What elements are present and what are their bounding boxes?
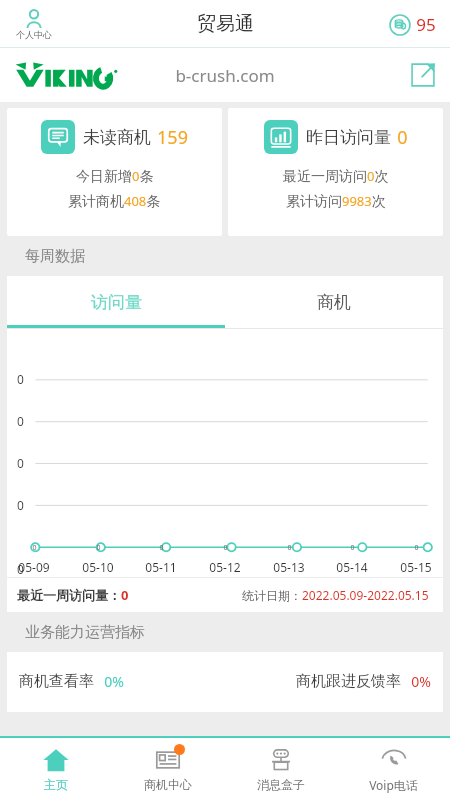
staticText: 每周数据 (25, 247, 85, 266)
button[interactable]: 消息盒子 (224, 738, 337, 800)
button[interactable]: Open website (410, 62, 436, 88)
button[interactable]: 访问量 (7, 276, 225, 328)
staticText: 商机中心 (144, 777, 192, 792)
staticText: 0 (17, 497, 24, 513)
staticText: 商机查看率 (19, 672, 94, 691)
button[interactable]: 昨日访问量 (228, 108, 443, 236)
staticText: 159 (157, 125, 188, 150)
staticText: 贸易通 (197, 12, 254, 36)
staticText: 消息盒子 (257, 777, 305, 792)
button[interactable]: 商机中心 (112, 738, 224, 800)
staticText: 累计商机408条 (68, 192, 161, 210)
staticText: 0 (17, 455, 24, 471)
staticText: 商机 (317, 292, 351, 313)
staticText: 0 (17, 561, 24, 577)
staticText: 0 (287, 543, 292, 553)
staticText: 个人中心 (16, 29, 52, 40)
staticText: 0% (411, 672, 431, 691)
staticText: Voip电话 (369, 777, 418, 793)
staticText: 今日新增0条 (76, 167, 154, 185)
staticText: 0% (104, 672, 124, 691)
staticText: 95 (416, 13, 436, 36)
staticText: 0 (17, 371, 24, 387)
staticText: 0 (414, 543, 419, 553)
button[interactable]: 未读商机 (7, 108, 222, 236)
staticText: 主页 (44, 777, 68, 792)
staticText: 05-09 (18, 559, 50, 575)
staticText: 0 (17, 413, 24, 429)
staticText: 05-15 (400, 559, 432, 575)
staticText: b-crush.com (175, 64, 275, 87)
staticText: 访问量 (91, 292, 142, 313)
button[interactable]: 个人中心 (12, 7, 56, 42)
button[interactable]: 主页 (0, 738, 112, 800)
staticText: 业务能力运营指标 (25, 623, 145, 642)
staticText: 最近一周访问0次 (283, 167, 389, 185)
staticText: 商机跟进反馈率 (296, 672, 401, 691)
button[interactable]: 商机查看率 (7, 652, 443, 712)
staticText: 0 (96, 543, 101, 553)
staticText: 0 (159, 543, 164, 553)
staticText: 最近一周访问量：0 (17, 586, 129, 604)
staticText: 0 (350, 543, 355, 553)
staticText: 05-10 (82, 559, 114, 575)
staticText: 0 (397, 125, 408, 150)
staticText: 未读商机 (83, 127, 151, 148)
button[interactable]: 商机 (225, 276, 443, 328)
staticText: 05-12 (209, 559, 241, 575)
button[interactable]: Voip电话 (337, 738, 450, 800)
button[interactable]: Coins balance (387, 13, 438, 36)
staticText: 昨日访问量 (306, 127, 391, 148)
staticText: 0 (32, 543, 37, 553)
staticText: 05-13 (273, 559, 305, 575)
staticText: 0 (223, 543, 228, 553)
staticText: 统计日期：2022.05.09-2022.05.15 (242, 587, 429, 603)
staticText: 累计访问9983次 (286, 192, 386, 210)
staticText: 05-14 (336, 559, 368, 575)
staticText: 05-11 (145, 559, 177, 575)
